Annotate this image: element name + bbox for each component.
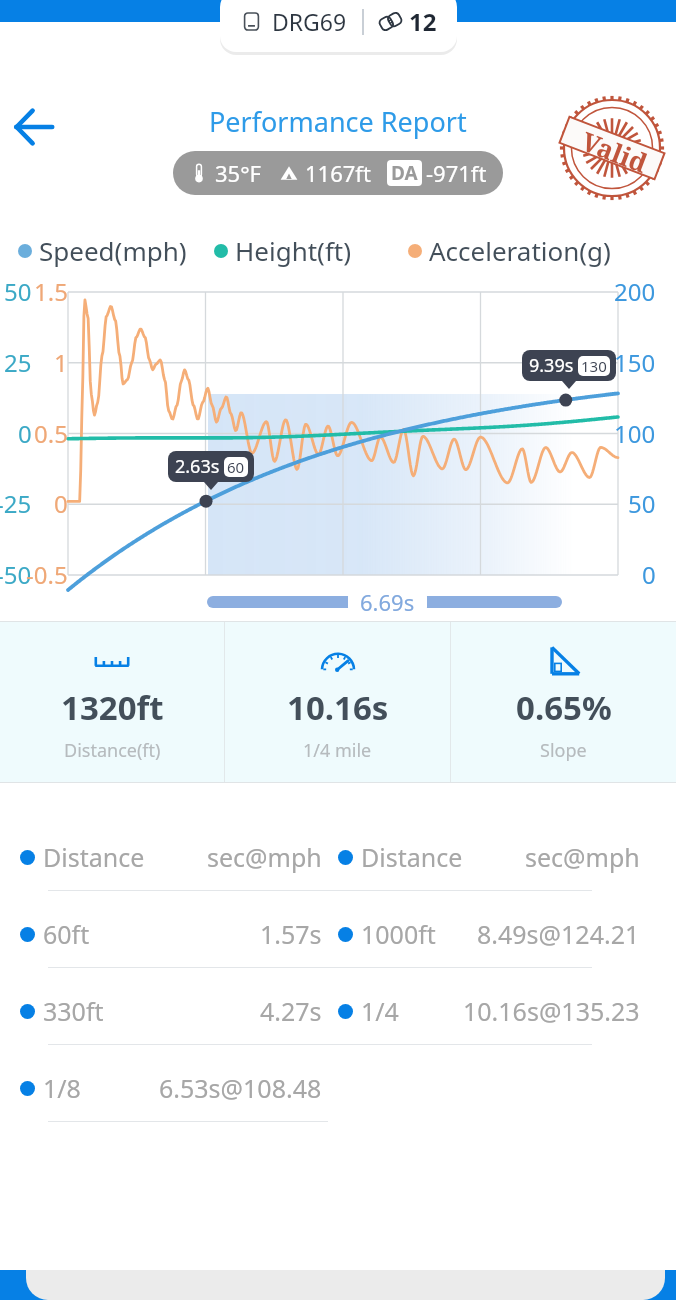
- staticText: 1/4: [361, 994, 399, 1028]
- staticText: DA: [391, 160, 418, 186]
- staticText: Performance Report: [209, 103, 467, 140]
- staticText: 9.39s: [529, 353, 574, 378]
- staticText: 8.49s@124.21: [477, 917, 640, 951]
- staticText: 4.27s: [260, 994, 322, 1028]
- staticText: DRG69: [272, 6, 347, 37]
- button[interactable]: 330ft: [20, 978, 338, 1044]
- button[interactable]: 35°F: [173, 151, 503, 195]
- button[interactable]: 1000ft: [338, 901, 656, 967]
- staticText: 1000ft: [361, 917, 436, 951]
- button[interactable]: 1/8: [20, 1055, 338, 1121]
- staticText: 6.69s: [360, 587, 415, 617]
- staticText: 6.53s@108.48: [159, 1071, 322, 1105]
- button[interactable]: 1320ft: [0, 622, 224, 782]
- staticText: Valid: [577, 123, 653, 180]
- button[interactable]: Speed(mph): [18, 233, 187, 268]
- staticText: 1167ft: [305, 158, 371, 188]
- button[interactable]: Height(ft): [214, 233, 352, 268]
- button[interactable]: Distance: [338, 824, 656, 890]
- staticText: -0.5: [26, 558, 68, 591]
- staticText: 0: [18, 417, 32, 450]
- staticText: 10.16s: [287, 685, 389, 730]
- button[interactable]: 10.16s: [225, 622, 450, 782]
- staticText: 0.65%: [516, 685, 612, 730]
- staticText: 10.16s@135.23: [463, 994, 640, 1028]
- staticText: 1/8: [43, 1071, 81, 1105]
- staticText: 1: [54, 346, 68, 379]
- button[interactable]: Distance: [20, 824, 338, 890]
- staticText: 35°F: [215, 158, 262, 188]
- other: Valid stamp: [548, 84, 676, 212]
- staticText: 0.5: [34, 417, 68, 450]
- staticText: 150: [614, 346, 656, 379]
- staticText: 130: [581, 356, 607, 376]
- staticText: sec@mph: [525, 840, 640, 874]
- staticText: 330ft: [43, 994, 104, 1028]
- staticText: Slope: [540, 738, 587, 763]
- staticText: 50: [4, 275, 32, 308]
- staticText: 1.5: [34, 275, 68, 308]
- staticText: Distance: [43, 840, 145, 874]
- staticText: 12: [409, 5, 437, 38]
- staticText: 1.57s: [260, 917, 322, 951]
- staticText: Acceleration(g): [429, 233, 611, 268]
- staticText: 100: [614, 417, 656, 450]
- staticText: Height(ft): [235, 233, 352, 268]
- button[interactable]: 0.65%: [451, 622, 676, 782]
- staticText: -971ft: [426, 158, 487, 188]
- staticText: 1320ft: [61, 685, 164, 730]
- staticText: 50: [628, 487, 656, 520]
- staticText: 60: [227, 457, 245, 477]
- button[interactable]: Acceleration(g): [408, 233, 611, 268]
- button[interactable]: 1/4: [338, 978, 656, 1044]
- button[interactable]: Back: [8, 102, 58, 152]
- staticText: 25: [4, 346, 32, 379]
- staticText: 0: [54, 487, 68, 520]
- staticText: 2.63s: [175, 454, 220, 479]
- button[interactable]: 60ft: [20, 901, 338, 967]
- staticText: 200: [614, 275, 656, 308]
- staticText: Distance: [361, 840, 463, 874]
- staticText: -25: [0, 487, 32, 520]
- staticText: Speed(mph): [39, 233, 187, 268]
- staticText: 60ft: [43, 917, 90, 951]
- staticText: 1/4 mile: [303, 738, 372, 763]
- staticText: 0: [642, 558, 656, 591]
- staticText: -50: [0, 558, 32, 591]
- staticText: Distance(ft): [64, 738, 161, 763]
- staticText: sec@mph: [207, 840, 322, 874]
- button[interactable]: DRG69: [220, 0, 457, 52]
